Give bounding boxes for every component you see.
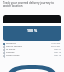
staticText: 100 %: [27, 28, 38, 33]
button[interactable]: In transit: [3, 48, 61, 51]
staticText: Shipped: [6, 51, 15, 54]
button[interactable]: Shipped: [3, 51, 61, 54]
staticText: 09:15 am: [51, 45, 61, 48]
button[interactable]: Out for delivery: [3, 45, 61, 48]
button[interactable]: Order placed: [3, 54, 61, 57]
staticText: In transit: [6, 48, 16, 51]
staticText: Mar 21: [54, 48, 61, 51]
button[interactable]: Delivered: [3, 42, 61, 45]
staticText: Mar 18: [54, 54, 61, 57]
staticText: Delivered: [6, 42, 16, 45]
staticText: 12:30 pm: [51, 42, 61, 45]
staticText: Track your covered delivery journey to w…: [3, 1, 61, 8]
staticText: Out for delivery: [6, 45, 23, 48]
staticText: Order placed: [6, 54, 20, 57]
button[interactable]: 100 %: [3, 15, 61, 41]
staticText: Mar 19: [54, 51, 61, 54]
